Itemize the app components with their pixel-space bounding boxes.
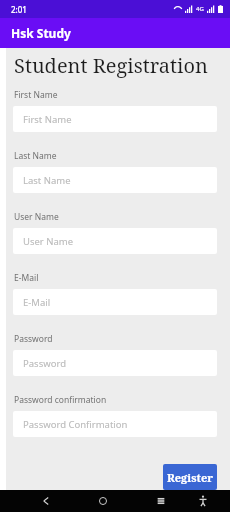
staticText: Password: [23, 357, 66, 370]
staticText: Password: [14, 333, 53, 345]
staticText: Last Name: [23, 174, 71, 187]
button[interactable]: Last Name: [13, 167, 217, 193]
button[interactable]: E-Mail: [13, 289, 217, 315]
staticText: First Name: [14, 89, 58, 101]
staticText: Student Registration: [14, 52, 208, 79]
staticText: User Name: [23, 235, 74, 248]
staticText: Last Name: [14, 150, 57, 162]
staticText: E-Mail: [23, 296, 51, 309]
staticText: 4G: [196, 5, 204, 13]
button[interactable]: Home: [92, 490, 114, 512]
button[interactable]: Password Confirmation: [13, 411, 217, 437]
button[interactable]: Accessibility: [192, 490, 214, 512]
button[interactable]: Recent apps: [150, 490, 172, 512]
button[interactable]: Password: [13, 350, 217, 376]
staticText: 2:01: [11, 4, 27, 15]
staticText: E-Mail: [14, 272, 39, 284]
staticText: Register: [167, 470, 213, 485]
button[interactable]: Register: [163, 464, 217, 490]
button[interactable]: User Name: [13, 228, 217, 254]
button[interactable]: Back: [35, 490, 57, 512]
staticText: First Name: [23, 113, 72, 126]
button[interactable]: First Name: [13, 106, 217, 132]
staticText: Password Confirmation: [23, 418, 128, 431]
staticText: User Name: [14, 211, 59, 223]
staticText: Hsk Study: [11, 25, 71, 41]
staticText: Password confirmation: [14, 394, 107, 406]
